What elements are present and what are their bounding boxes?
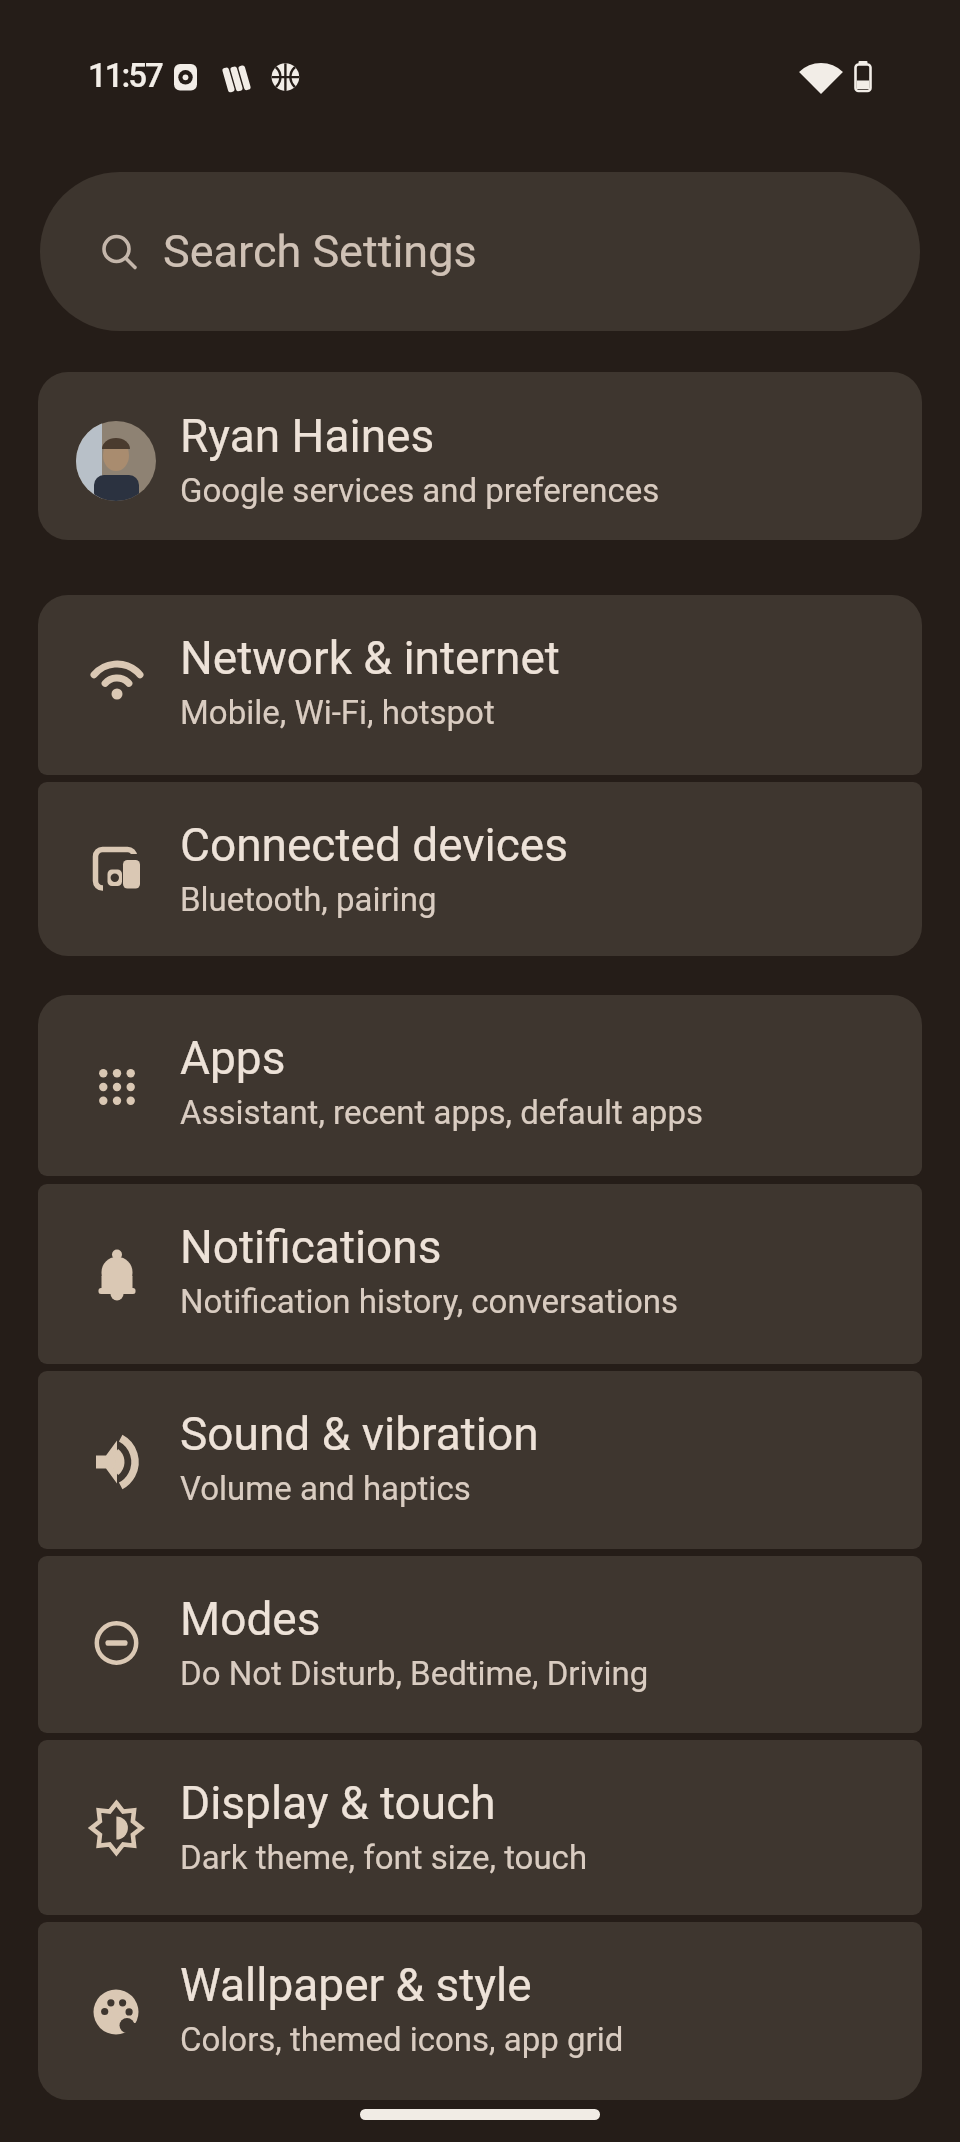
staticText: Modes xyxy=(180,1592,321,1646)
button[interactable] xyxy=(360,2109,600,2120)
staticText: Bluetooth, pairing xyxy=(180,880,437,919)
button[interactable]: Ryan Haines xyxy=(38,372,922,540)
button[interactable]: Display & touch xyxy=(38,1740,922,1915)
staticText: Assistant, recent apps, default apps xyxy=(180,1093,703,1132)
button[interactable]: Notifications xyxy=(38,1184,922,1364)
staticText: Apps xyxy=(180,1031,286,1085)
staticText: Sound & vibration xyxy=(180,1407,539,1461)
button[interactable]: Network & internet xyxy=(38,595,922,775)
staticText: 11:57 xyxy=(88,56,162,95)
staticText: Volume and haptics xyxy=(180,1469,471,1508)
staticText: Dark theme, font size, touch xyxy=(180,1838,588,1877)
staticText: Notification history, conversations xyxy=(180,1282,678,1321)
staticText: Colors, themed icons, app grid xyxy=(180,2020,624,2059)
staticText: Ryan Haines xyxy=(180,409,435,463)
staticText: Connected devices xyxy=(180,818,568,872)
staticText: Search Settings xyxy=(163,225,477,278)
staticText: Notifications xyxy=(180,1220,442,1274)
button[interactable]: Apps xyxy=(38,995,922,1176)
staticText: Network & internet xyxy=(180,631,560,685)
button[interactable]: Modes xyxy=(38,1556,922,1733)
button[interactable]: Sound & vibration xyxy=(38,1371,922,1549)
button[interactable]: Wallpaper & style xyxy=(38,1922,922,2100)
staticText: Display & touch xyxy=(180,1776,496,1830)
button[interactable]: Search Settings xyxy=(40,172,920,331)
staticText: Wallpaper & style xyxy=(180,1958,532,2012)
staticText: Do Not Disturb, Bedtime, Driving xyxy=(180,1654,649,1693)
staticText: Mobile, Wi-Fi, hotspot xyxy=(180,693,495,732)
button[interactable]: Connected devices xyxy=(38,782,922,956)
staticText: Google services and preferences xyxy=(180,471,660,510)
